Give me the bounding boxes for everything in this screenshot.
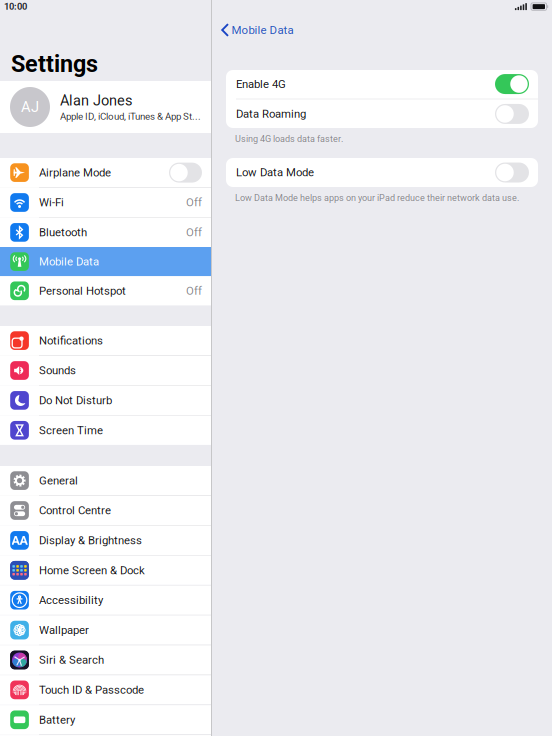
staticText: Do Not Disturb <box>39 394 112 407</box>
staticText: Low Data Mode helps apps on your iPad re… <box>235 193 519 203</box>
button[interactable]: Notifications <box>0 326 211 355</box>
button[interactable]: Screen Time <box>0 416 211 445</box>
staticText: Data Roaming <box>236 107 306 121</box>
button[interactable]: Accessibility <box>0 586 211 615</box>
button[interactable]: Touch ID & Passcode <box>0 675 211 704</box>
button[interactable]: Wallpaper <box>0 615 211 645</box>
staticText: Sounds <box>39 364 76 377</box>
button[interactable]: Airplane Mode <box>0 158 211 187</box>
staticText: Low Data Mode <box>236 166 314 179</box>
button[interactable]: Personal Hotspot <box>0 276 211 305</box>
button[interactable]: Bluetooth <box>0 218 211 247</box>
button[interactable]: Siri & Search <box>0 645 211 675</box>
staticText: Mobile Data <box>39 255 99 268</box>
staticText: Airplane Mode <box>39 166 111 179</box>
button[interactable]: Low Data Mode <box>226 158 538 187</box>
staticText: Mobile Data <box>231 23 293 37</box>
staticText: Screen Time <box>39 424 103 437</box>
button[interactable]: AJ <box>0 81 211 133</box>
staticText: Off <box>186 196 202 209</box>
staticText: Off <box>186 284 202 297</box>
staticText: Touch ID & Passcode <box>39 683 144 697</box>
button[interactable]: Data Roaming <box>226 99 538 128</box>
staticText: Accessibility <box>39 594 103 607</box>
button[interactable]: General <box>0 466 211 495</box>
button[interactable]: Mobile Data <box>221 19 331 41</box>
button[interactable]: Sounds <box>0 356 211 385</box>
button[interactable]: Home Screen & Dock <box>0 556 211 585</box>
button[interactable]: Wi-Fi <box>0 188 211 217</box>
button[interactable]: Do Not Disturb <box>0 386 211 415</box>
staticText: Apple ID, iCloud, iTunes & App St... <box>60 111 201 122</box>
button[interactable]: AA <box>0 526 211 555</box>
staticText: Using 4G loads data faster. <box>235 134 343 144</box>
staticText: Wi-Fi <box>39 196 64 209</box>
staticText: Battery <box>39 713 75 726</box>
staticText: AJ <box>21 98 39 116</box>
button[interactable]: Control Centre <box>0 496 211 525</box>
staticText: Alan Jones <box>60 92 133 109</box>
staticText: Wallpaper <box>39 623 89 637</box>
staticText: Bluetooth <box>39 226 87 239</box>
button[interactable]: Mobile Data <box>0 247 211 276</box>
staticText: Enable 4G <box>236 77 286 91</box>
button[interactable]: Enable 4G <box>226 69 538 99</box>
staticText: Notifications <box>39 334 103 347</box>
staticText: Siri & Search <box>39 653 104 667</box>
staticText: Settings <box>11 50 98 78</box>
staticText: Off <box>186 226 202 239</box>
staticText: Home Screen & Dock <box>39 564 145 577</box>
staticText: 10:00 <box>4 1 27 12</box>
staticText: Personal Hotspot <box>39 284 126 297</box>
staticText: General <box>39 474 78 487</box>
staticText: Display & Brightness <box>39 534 142 547</box>
staticText: Control Centre <box>39 504 111 517</box>
button[interactable]: Battery <box>0 705 211 734</box>
staticText: AA <box>11 533 27 548</box>
